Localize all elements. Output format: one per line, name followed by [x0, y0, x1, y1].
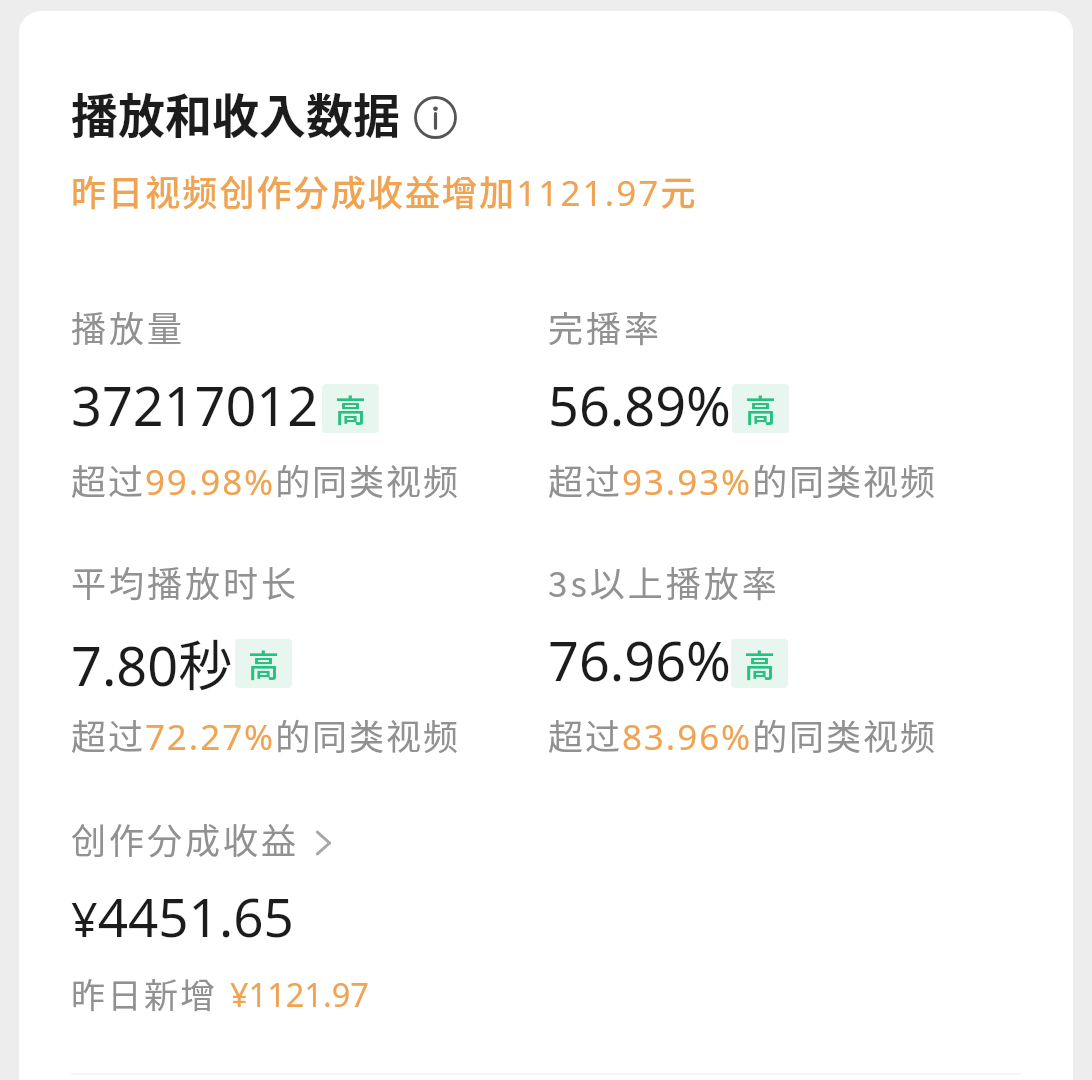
staticText: 高: [248, 641, 279, 686]
staticText: 超过93.93%的同类视频: [548, 454, 937, 505]
staticText: ¥4451.65: [71, 880, 294, 952]
staticText: 76.96%: [548, 623, 731, 697]
staticText: 3s以上播放率: [548, 556, 780, 607]
staticText: 平均播放时长: [71, 556, 300, 607]
staticText: 播放量: [71, 301, 186, 352]
button[interactable]: 创作分成收益: [71, 810, 333, 866]
button[interactable]: 数据说明: [414, 96, 457, 139]
staticText: 播放和收入数据: [71, 78, 400, 146]
staticText: 超过99.98%的同类视频: [71, 454, 460, 505]
staticText: 超过83.96%的同类视频: [548, 709, 937, 760]
staticText: 高: [744, 641, 775, 686]
staticText: 56.89%: [548, 368, 731, 442]
staticText: 7.80秒: [71, 623, 233, 701]
staticText: 37217012: [71, 368, 319, 442]
staticText: 超过72.27%的同类视频: [71, 709, 460, 760]
staticText: 高: [335, 386, 366, 431]
staticText: 昨日视频创作分成收益增加1121.97元: [71, 165, 698, 216]
staticText: 昨日新增: [71, 969, 217, 1018]
staticText: 高: [745, 386, 776, 431]
staticText: 完播率: [548, 301, 663, 352]
staticText: ¥1121.97: [230, 972, 369, 1016]
staticText: 创作分成收益: [71, 813, 300, 864]
